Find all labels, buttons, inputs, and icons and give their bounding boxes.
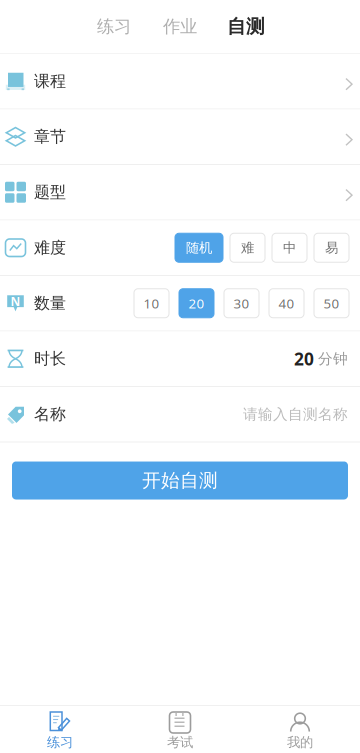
staticText: 随机: [186, 240, 212, 256]
staticText: 20: [188, 294, 204, 312]
staticText: N: [10, 293, 20, 309]
button[interactable]: 自测: [213, 9, 279, 43]
staticText: 易: [325, 240, 338, 256]
button[interactable]: 练习: [81, 9, 147, 43]
button[interactable]: 名称: [0, 387, 360, 442]
staticText: 数量: [34, 293, 66, 313]
button[interactable]: 30: [224, 289, 259, 318]
button[interactable]: 易: [314, 233, 349, 262]
button[interactable]: 开始自测: [12, 461, 348, 499]
button[interactable]: 10: [134, 289, 169, 318]
staticText: 中: [283, 240, 296, 256]
staticText: 难: [241, 240, 254, 256]
staticText: 50: [323, 294, 339, 312]
staticText: 练习: [47, 734, 73, 750]
staticText: 难度: [34, 238, 66, 258]
button[interactable]: 中: [272, 233, 307, 262]
staticText: 20: [294, 347, 314, 370]
button[interactable]: 考试: [120, 706, 240, 753]
staticText: 题型: [34, 182, 66, 202]
button[interactable]: 题型: [0, 165, 360, 220]
staticText: 自测: [227, 15, 265, 38]
staticText: 考试: [167, 734, 193, 750]
staticText: 我的: [287, 734, 313, 750]
button[interactable]: 40: [269, 289, 304, 318]
staticText: 时长: [34, 349, 66, 369]
button[interactable]: 50: [314, 289, 349, 318]
button[interactable]: 随机: [175, 233, 223, 262]
staticText: 30: [233, 294, 249, 312]
button[interactable]: 20: [179, 289, 214, 318]
staticText: 作业: [163, 16, 197, 37]
staticText: 分钟: [314, 350, 348, 368]
staticText: 课程: [34, 71, 66, 91]
staticText: 章节: [34, 127, 66, 147]
staticText: 练习: [97, 16, 131, 37]
button[interactable]: 练习: [0, 706, 120, 753]
button[interactable]: 章节: [0, 109, 360, 165]
button[interactable]: 课程: [0, 54, 360, 109]
staticText: 请输入自测名称: [243, 405, 348, 423]
button[interactable]: 难: [230, 233, 265, 262]
staticText: 名称: [34, 404, 66, 424]
button[interactable]: 时长: [0, 331, 360, 387]
staticText: 10: [143, 294, 159, 312]
staticText: 40: [278, 294, 294, 312]
button[interactable]: 我的: [240, 706, 360, 753]
staticText: 开始自测: [142, 469, 218, 492]
button[interactable]: 作业: [147, 9, 213, 43]
